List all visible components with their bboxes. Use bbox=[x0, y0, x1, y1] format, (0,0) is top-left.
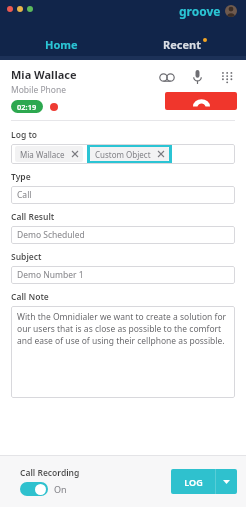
button[interactable]: Demo Scheduled bbox=[11, 226, 235, 244]
button[interactable]: Call recording toggle, on bbox=[20, 482, 48, 496]
staticText: Demo Scheduled bbox=[17, 229, 85, 241]
staticText: Type bbox=[11, 171, 31, 183]
button[interactable]: Profile bbox=[225, 5, 237, 17]
button[interactable]: End call bbox=[165, 92, 237, 110]
other: Remove Mia Wallace bbox=[72, 151, 78, 157]
button[interactable]: Call bbox=[11, 186, 235, 204]
staticText: Log to bbox=[11, 129, 38, 141]
staticText: With the Omnidialer we want to create a … bbox=[17, 311, 230, 347]
button[interactable]: Voicemail bbox=[157, 67, 177, 87]
button[interactable]: With the Omnidialer we want to create a … bbox=[11, 306, 235, 398]
staticText: Mia Wallace bbox=[11, 67, 77, 82]
staticText: Custom Object bbox=[95, 149, 151, 160]
staticText: Call Recording bbox=[20, 467, 80, 479]
staticText: Call bbox=[17, 189, 32, 201]
button[interactable]: Custom Object bbox=[90, 147, 169, 161]
button[interactable]: Mia Wallace bbox=[11, 144, 235, 164]
other: Remove Custom Object bbox=[158, 151, 164, 157]
staticText: Mia Wallace bbox=[20, 149, 65, 160]
button[interactable]: Demo Number 1 bbox=[11, 266, 235, 284]
button[interactable]: Mia Wallace bbox=[15, 146, 83, 162]
staticText: Home bbox=[45, 37, 78, 52]
button[interactable]: LOG bbox=[171, 469, 215, 494]
staticText: Call Note bbox=[11, 291, 49, 303]
button[interactable]: Dial pad bbox=[217, 67, 237, 87]
button[interactable]: Home bbox=[0, 35, 123, 53]
button[interactable]: More log options bbox=[216, 469, 237, 494]
staticText: groove bbox=[179, 3, 221, 19]
staticText: LOG bbox=[184, 476, 203, 488]
button[interactable]: Mute microphone bbox=[187, 67, 207, 87]
staticText: On bbox=[54, 483, 67, 495]
staticText: Demo Number 1 bbox=[17, 269, 84, 281]
staticText: Subject bbox=[11, 251, 42, 263]
button[interactable]: Recent bbox=[123, 35, 246, 53]
staticText: Recent bbox=[163, 37, 201, 52]
staticText: Call Result bbox=[11, 211, 55, 223]
staticText: Mobile Phone bbox=[11, 84, 67, 96]
staticText: 02:19 bbox=[17, 102, 37, 112]
